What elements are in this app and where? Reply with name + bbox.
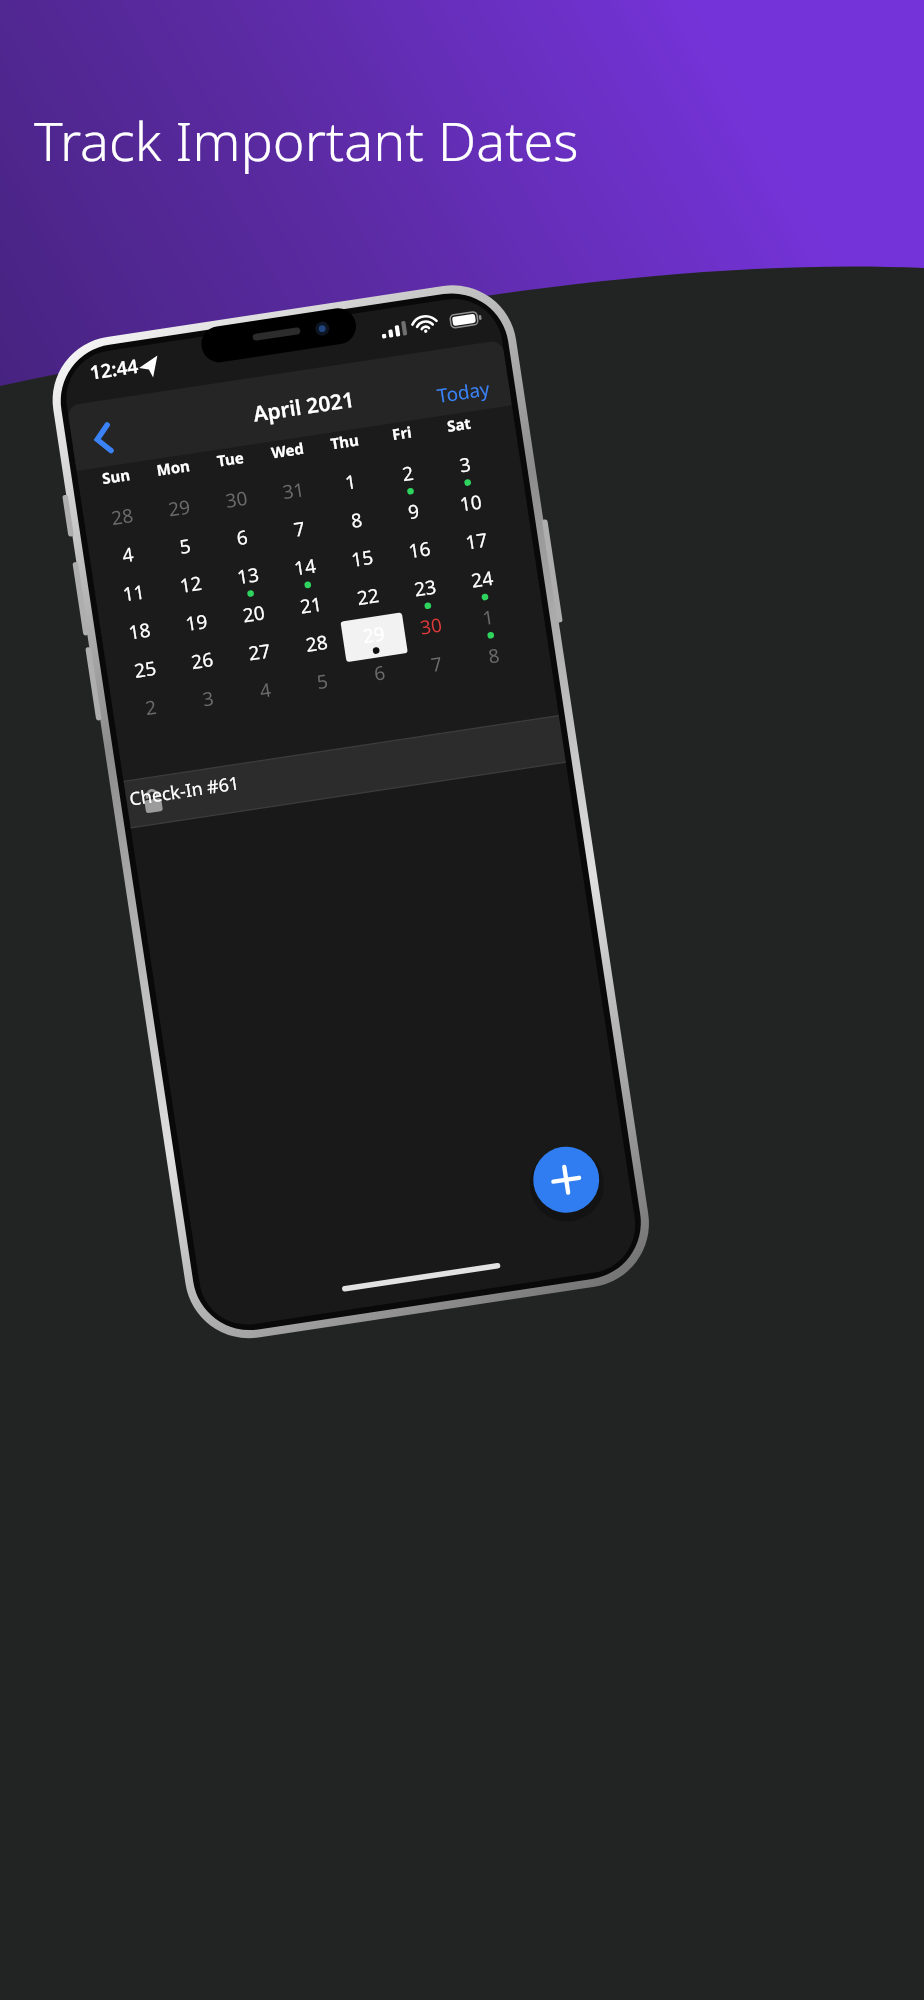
staticText: 3 xyxy=(428,447,502,487)
staticText: Wed xyxy=(248,435,327,472)
staticText: 18 xyxy=(103,613,176,653)
staticText: 29 xyxy=(337,617,411,657)
staticText: 4 xyxy=(229,672,302,712)
staticText: 14 xyxy=(268,549,342,589)
staticText: Sat xyxy=(420,409,499,446)
staticText: 13 xyxy=(211,558,285,598)
staticText: 6 xyxy=(343,655,417,695)
staticText: 30 xyxy=(200,481,273,521)
staticText: 5 xyxy=(148,528,222,568)
staticText: 31 xyxy=(257,473,331,513)
staticText: 7 xyxy=(400,646,474,686)
staticText: 4 xyxy=(91,537,165,577)
staticText: 25 xyxy=(109,651,182,691)
staticText: 28 xyxy=(280,625,354,665)
staticText: 1 xyxy=(314,464,388,504)
staticText: Check-In #61 xyxy=(127,752,360,820)
staticText: 1 xyxy=(451,599,525,639)
button[interactable]: Check-In #61 xyxy=(127,752,360,820)
staticText: 12:44 xyxy=(58,348,171,396)
staticText: 9 xyxy=(377,493,451,534)
button[interactable]: Add event xyxy=(525,1139,607,1221)
button[interactable]: Today xyxy=(402,370,526,422)
staticText: 26 xyxy=(166,643,239,683)
staticText: April 2021 xyxy=(208,378,400,440)
staticText: 3 xyxy=(171,681,245,721)
staticText: 8 xyxy=(457,638,531,678)
staticText: 19 xyxy=(160,604,234,644)
staticText: Fri xyxy=(363,417,442,454)
staticText: 28 xyxy=(85,499,159,539)
staticText: 27 xyxy=(223,634,297,674)
staticText: Tue xyxy=(191,443,270,480)
staticText: 15 xyxy=(326,540,399,580)
staticText: 20 xyxy=(217,596,291,636)
staticText: 21 xyxy=(274,587,348,627)
staticText: 5 xyxy=(286,663,359,704)
staticText: 24 xyxy=(446,561,519,601)
staticText: 8 xyxy=(320,502,394,542)
staticText: 11 xyxy=(97,575,171,615)
staticText: Thu xyxy=(305,426,384,463)
staticText: Today xyxy=(402,370,526,422)
staticText: 16 xyxy=(383,532,456,572)
staticText: 17 xyxy=(440,523,514,563)
staticText: 10 xyxy=(434,485,508,525)
staticText: Sun xyxy=(77,461,156,498)
staticText: 12 xyxy=(154,566,228,606)
staticText: 22 xyxy=(331,578,405,619)
staticText: 23 xyxy=(389,570,462,610)
staticText: Mon xyxy=(134,452,213,489)
button[interactable]: Back xyxy=(68,407,132,471)
staticText: 2 xyxy=(371,455,445,495)
staticText: 30 xyxy=(394,608,468,648)
staticText: 2 xyxy=(114,689,188,729)
staticText: 29 xyxy=(143,490,216,530)
staticText: 7 xyxy=(263,511,336,551)
staticText: Track Important Dates xyxy=(34,103,579,177)
staticText: 6 xyxy=(206,519,279,560)
